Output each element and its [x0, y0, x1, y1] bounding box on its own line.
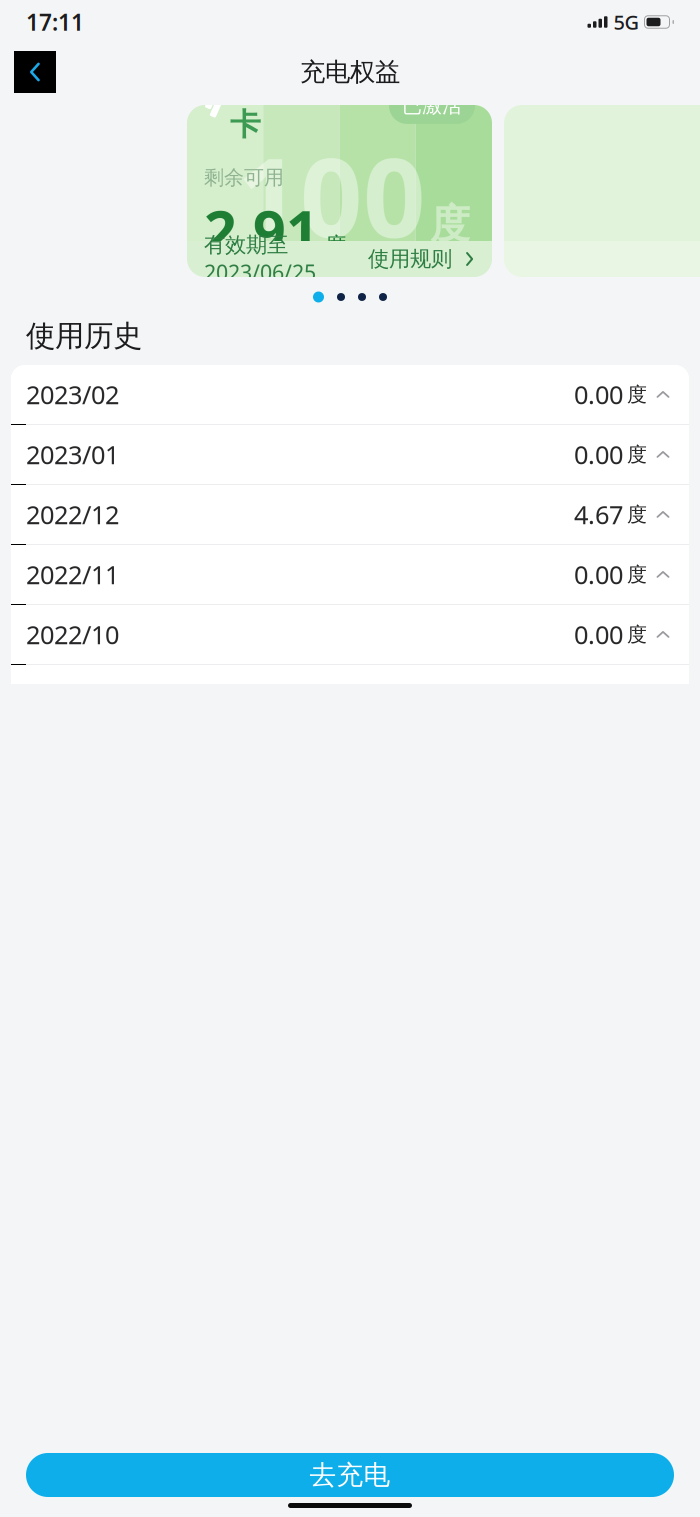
button[interactable]: 2022/10	[11, 605, 689, 665]
staticText: 度	[627, 502, 647, 527]
staticText: 使用历史	[26, 318, 142, 354]
button[interactable]: 已激活	[389, 87, 475, 124]
staticText: 2023/02	[26, 378, 119, 411]
staticText: 度	[627, 562, 647, 587]
staticText: 0.00	[574, 618, 623, 651]
staticText: 2022/09	[26, 678, 119, 711]
button[interactable]: 2023/02	[11, 365, 689, 425]
staticText: 去充电	[309, 1459, 390, 1491]
staticText: 度	[430, 199, 470, 249]
staticText: 4.67	[574, 498, 623, 531]
button[interactable]: 2022/11	[11, 545, 689, 605]
staticText: 4.28	[574, 678, 623, 711]
button[interactable]: 返回	[14, 51, 56, 93]
button[interactable]: 2023/01	[11, 425, 689, 485]
staticText: 剩余可用	[204, 165, 284, 190]
staticText: 度	[627, 442, 647, 467]
staticText: 2022/10	[26, 618, 119, 651]
staticText: 100	[237, 122, 426, 268]
staticText: 度	[627, 622, 647, 647]
staticText: 度	[325, 232, 346, 258]
button[interactable]: 2022/09	[11, 665, 689, 725]
staticText: 17:11	[26, 7, 84, 37]
staticText: 使用规则	[368, 246, 452, 272]
staticText: 度	[627, 382, 647, 407]
staticText: 公共充电卡	[230, 68, 354, 143]
staticText: 0.00	[574, 558, 623, 591]
staticText: 2.91	[204, 192, 319, 268]
staticText: 2022/12	[26, 498, 119, 531]
staticText: 0.00	[574, 438, 623, 471]
button[interactable]: 有效期至2023/06/25	[187, 241, 492, 277]
staticText: 2023/01	[26, 438, 119, 471]
staticText: 已激活	[402, 93, 462, 118]
staticText: 5G	[613, 9, 639, 35]
staticText: 充电权益	[300, 56, 400, 87]
staticText: 0.00	[574, 378, 623, 411]
button[interactable]: 2022/12	[11, 485, 689, 545]
staticText: 2022/11	[26, 558, 119, 591]
button[interactable]: 去充电	[26, 1453, 674, 1497]
staticText: 有效期至2023/06/25	[204, 232, 316, 286]
